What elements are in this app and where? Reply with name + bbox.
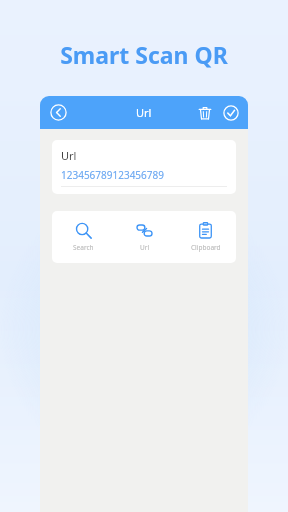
staticText: Url bbox=[61, 148, 77, 163]
staticText: Smart Scan QR bbox=[0, 39, 288, 70]
staticText: 123456789123456789 bbox=[61, 168, 164, 182]
button[interactable]: Url bbox=[114, 216, 175, 258]
button[interactable]: Url bbox=[52, 140, 236, 194]
button[interactable]: Search bbox=[52, 216, 114, 258]
button[interactable]: Confirm bbox=[218, 100, 244, 126]
button[interactable]: Clipboard bbox=[175, 216, 236, 258]
staticText: Clipboard bbox=[191, 243, 221, 252]
staticText: Url bbox=[140, 243, 150, 252]
staticText: Url bbox=[136, 105, 152, 120]
button[interactable]: Delete bbox=[192, 100, 218, 126]
button[interactable]: Back bbox=[45, 99, 72, 126]
staticText: Search bbox=[73, 243, 94, 252]
